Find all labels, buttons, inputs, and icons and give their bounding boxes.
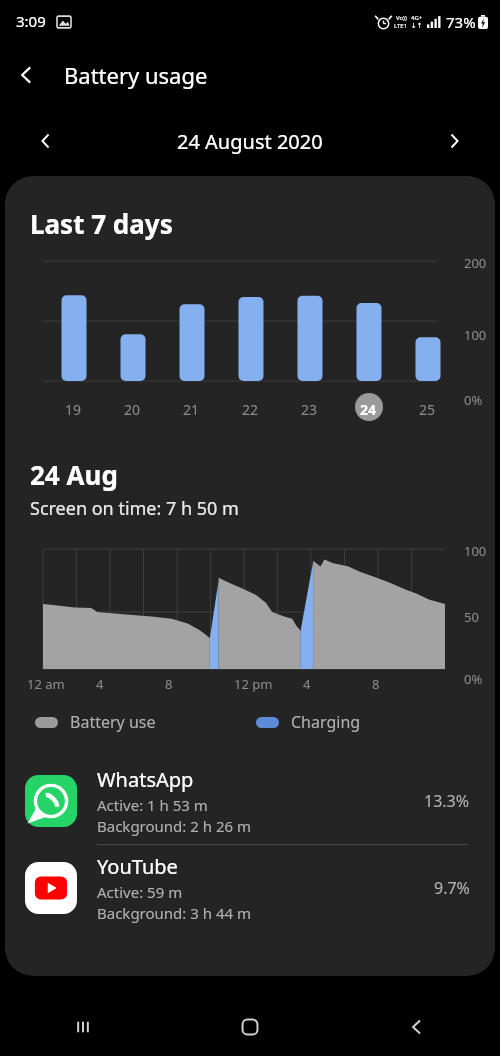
staticText: 73% [446,12,476,32]
button[interactable]: Next day [432,119,476,163]
staticText: 24 August 2020 [177,128,323,155]
staticText: Battery use [70,711,156,733]
button[interactable]: YouTube [5,845,495,931]
staticText: 0% [464,670,483,688]
staticText: 24 Aug [30,457,118,492]
staticText: 4G+ [411,14,423,22]
button[interactable]: Home [166,998,333,1056]
staticText: 9.7% [434,877,470,899]
staticText: 25 [419,400,436,419]
staticText: 100 [464,542,487,560]
staticText: 21 [183,400,200,419]
staticText: 50 [464,608,479,626]
button[interactable]: Previous day [24,119,68,163]
staticText: 12 am [27,675,65,693]
staticText: Screen on time: 7 h 50 m [30,496,239,521]
button[interactable]: WhatsApp [5,758,495,844]
staticText: Last 7 days [30,206,173,241]
staticText: 200 [464,254,487,272]
staticText: 100 [464,326,487,344]
staticText: 8 [165,675,173,693]
staticText: Vo)) [396,14,407,22]
staticText: 22 [242,400,259,419]
button[interactable]: Back [333,998,500,1056]
staticText: Background: 3 h 44 m [97,903,251,923]
button[interactable]: Recents [0,998,166,1056]
staticText: 13.3% [424,790,470,812]
staticText: 4 [96,675,104,693]
staticText: Active: 59 m [97,882,183,902]
staticText: Battery usage [64,60,208,90]
staticText: 19 [65,400,82,419]
staticText: 0% [464,391,483,409]
staticText: Background: 2 h 26 m [97,816,251,836]
staticText: LTE1 [394,22,408,30]
staticText: 4 [303,675,311,693]
staticText: 23 [301,400,318,419]
staticText: 24 [360,400,377,419]
staticText: ↓↑ [411,22,423,30]
staticText: 12 pm [234,675,273,693]
button[interactable]: Back [0,48,54,102]
staticText: WhatsApp [97,766,194,793]
staticText: 20 [124,400,141,419]
staticText: YouTube [97,853,178,880]
staticText: Charging [291,711,361,733]
staticText: Active: 1 h 53 m [97,795,208,815]
staticText: 3:09 [16,11,46,31]
staticText: 8 [372,675,380,693]
